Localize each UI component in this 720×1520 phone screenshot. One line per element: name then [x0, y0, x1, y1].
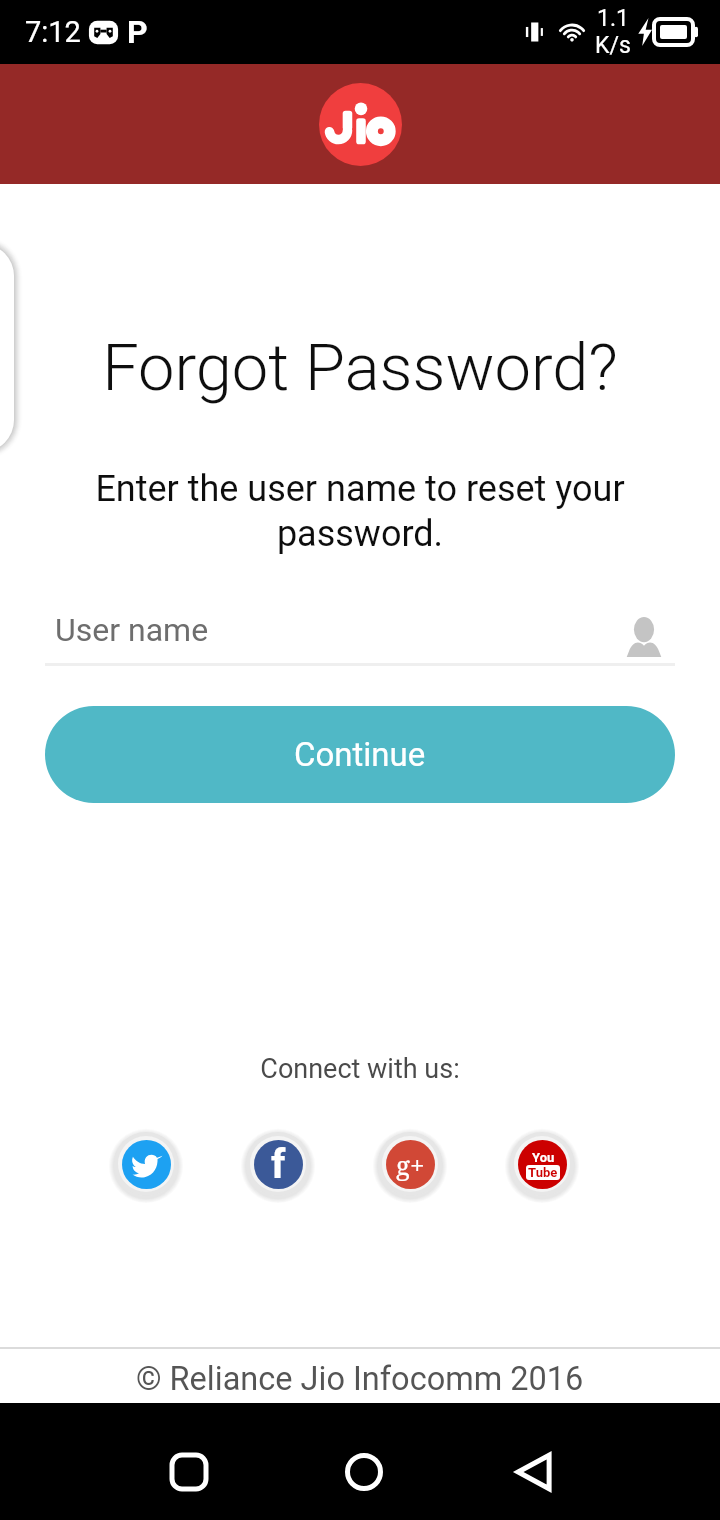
staticText: 7:12 — [25, 15, 81, 49]
button[interactable]: YouTube — [507, 1129, 577, 1199]
button[interactable]: User name — [45, 594, 675, 666]
staticText: User name — [55, 611, 209, 649]
staticText: Tube — [528, 1165, 558, 1180]
staticText: © Reliance Jio Infocomm 2016 — [136, 1360, 584, 1398]
button[interactable]: Back — [489, 1436, 579, 1508]
button[interactable]: Jio home — [319, 83, 402, 166]
staticText: You — [532, 1150, 555, 1165]
staticText: Enter the user name to reset your passwo… — [46, 468, 674, 555]
staticText: 1.1 — [597, 5, 629, 32]
staticText: f — [271, 1141, 286, 1188]
button[interactable]: Home — [319, 1436, 409, 1508]
staticText: Forgot Password? — [0, 330, 720, 406]
staticText: Continue — [294, 735, 426, 774]
staticText: Connect with us: — [0, 1053, 720, 1085]
staticText: P — [127, 13, 148, 51]
button[interactable]: Google Plus — [375, 1129, 445, 1199]
staticText: K/s — [595, 32, 631, 59]
button[interactable]: Continue — [45, 706, 675, 803]
button[interactable]: Twitter — [111, 1129, 181, 1199]
staticText: g+ — [396, 1147, 425, 1182]
button[interactable]: Recent apps — [144, 1436, 234, 1508]
button[interactable]: Facebook — [243, 1129, 313, 1199]
